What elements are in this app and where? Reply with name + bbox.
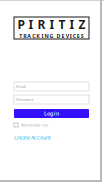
button[interactable]: Create Account [14, 135, 89, 140]
staticText: Create Account [14, 134, 51, 141]
button[interactable]: Remember me [14, 123, 89, 127]
staticText: Log in [44, 110, 59, 117]
button[interactable]: Log in [14, 109, 89, 118]
staticText: Remember me [21, 122, 48, 128]
staticText: Email [16, 84, 26, 89]
staticText: Password [16, 97, 33, 102]
staticText: TRACKING DEVICES [19, 32, 84, 39]
staticText: PIRITIZ [17, 16, 85, 32]
